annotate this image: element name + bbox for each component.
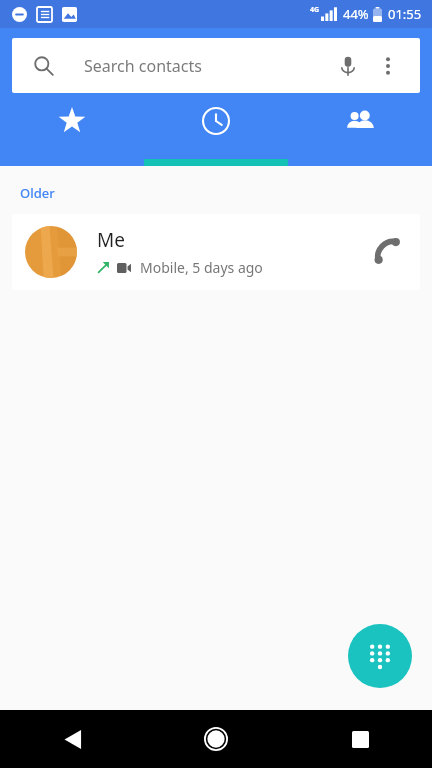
staticText: 4G	[310, 5, 320, 15]
button[interactable]: Dialpad	[348, 624, 412, 688]
staticText: 44%	[343, 5, 369, 23]
other: Search	[32, 54, 56, 78]
staticText: 01:55	[388, 5, 422, 23]
button[interactable]: Recent apps	[288, 710, 432, 768]
staticText: Older	[20, 184, 55, 202]
staticText: Search contacts	[84, 55, 202, 77]
button[interactable]: Contacts	[288, 107, 432, 137]
staticText: Mobile, 5 days ago	[140, 258, 263, 277]
button[interactable]: Search	[12, 38, 420, 93]
button[interactable]: Favourites	[0, 107, 144, 135]
button[interactable]: Call	[360, 224, 416, 280]
button[interactable]: Me	[12, 214, 420, 290]
button[interactable]: More options	[368, 46, 408, 86]
button[interactable]: Home	[144, 710, 288, 768]
staticText: Me	[97, 227, 125, 253]
button[interactable]: Voice search	[328, 46, 368, 86]
button[interactable]: Recents	[144, 107, 288, 135]
button[interactable]: Back	[0, 710, 144, 768]
